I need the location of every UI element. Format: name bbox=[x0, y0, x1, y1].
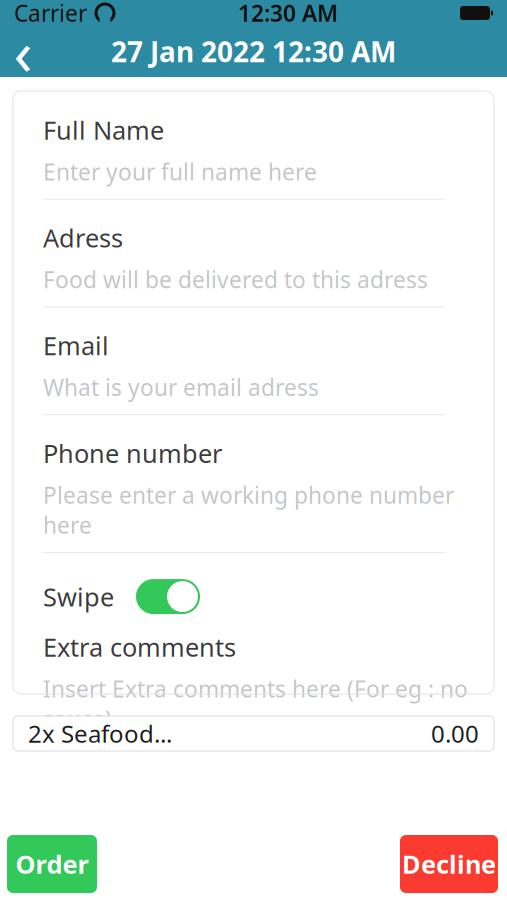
staticText: Carrier bbox=[14, 0, 87, 28]
button[interactable]: Swipe bbox=[136, 579, 200, 614]
staticText: What is your email adress bbox=[43, 372, 319, 402]
staticText: Adress bbox=[43, 221, 123, 254]
staticText: Full Name bbox=[43, 113, 164, 147]
staticText: 12:30 AM bbox=[238, 0, 338, 28]
staticText: Food will be delivered to this adress bbox=[43, 264, 428, 294]
staticText: Extra comments bbox=[43, 630, 236, 664]
staticText: Swipe bbox=[43, 580, 114, 613]
staticText: Email bbox=[43, 328, 109, 362]
staticText: Decline bbox=[402, 847, 496, 881]
staticText: Phone number bbox=[43, 436, 222, 470]
staticText: Order bbox=[15, 847, 88, 881]
button[interactable]: Decline bbox=[400, 835, 498, 893]
staticText: 27 Jan 2022 12:30 AM bbox=[111, 33, 396, 70]
staticText: Please enter a working phone number here bbox=[43, 480, 454, 540]
staticText: ‹ bbox=[13, 11, 32, 92]
button[interactable]: Order bbox=[7, 835, 97, 893]
staticText: 0.00 bbox=[431, 718, 479, 749]
staticText: 2x Seafood... bbox=[28, 718, 172, 749]
staticText: Insert Extra comments here (For eg : no … bbox=[43, 674, 468, 734]
button[interactable]: 2x Seafood... bbox=[13, 716, 494, 751]
staticText: Enter your full name here bbox=[43, 157, 317, 187]
button[interactable]: Back bbox=[0, 26, 46, 76]
